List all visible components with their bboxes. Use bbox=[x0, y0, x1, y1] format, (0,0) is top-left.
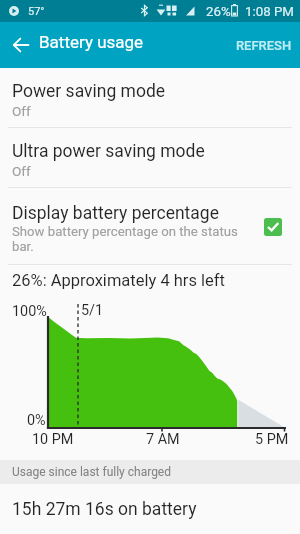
staticText: Power saving mode bbox=[12, 81, 166, 102]
staticText: Off bbox=[12, 103, 31, 119]
button[interactable]: Navigate up bbox=[0, 22, 41, 68]
staticText: Usage since last fully charged bbox=[12, 465, 171, 479]
staticText: 57° bbox=[28, 5, 45, 18]
staticText: 7 AM bbox=[146, 431, 180, 448]
staticText: Off bbox=[12, 163, 31, 179]
staticText: 100% bbox=[12, 303, 47, 320]
button[interactable]: REFRESH bbox=[228, 22, 300, 68]
staticText: 1:08 PM bbox=[245, 4, 294, 20]
staticText: 5/1 bbox=[81, 302, 104, 319]
staticText: 26%: Approximately 4 hrs left bbox=[12, 271, 225, 290]
staticText: Battery usage bbox=[39, 32, 144, 52]
staticText: 26% bbox=[206, 4, 231, 20]
staticText: 0% bbox=[27, 412, 46, 429]
button[interactable]: Display battery percentage bbox=[0, 188, 300, 264]
staticText: Ultra power saving mode bbox=[12, 141, 205, 162]
staticText: 15h 27m 16s on battery bbox=[12, 499, 197, 520]
staticText: 5 PM bbox=[255, 431, 289, 448]
staticText: Show battery percentage on the status ba… bbox=[12, 224, 252, 254]
button[interactable]: Power saving mode bbox=[0, 68, 300, 127]
button[interactable]: 15h 27m 16s on battery bbox=[0, 484, 300, 534]
staticText: Display battery percentage bbox=[12, 203, 219, 224]
staticText: REFRESH bbox=[236, 38, 292, 53]
staticText: 10 PM bbox=[32, 431, 74, 448]
button[interactable]: Ultra power saving mode bbox=[0, 128, 300, 187]
